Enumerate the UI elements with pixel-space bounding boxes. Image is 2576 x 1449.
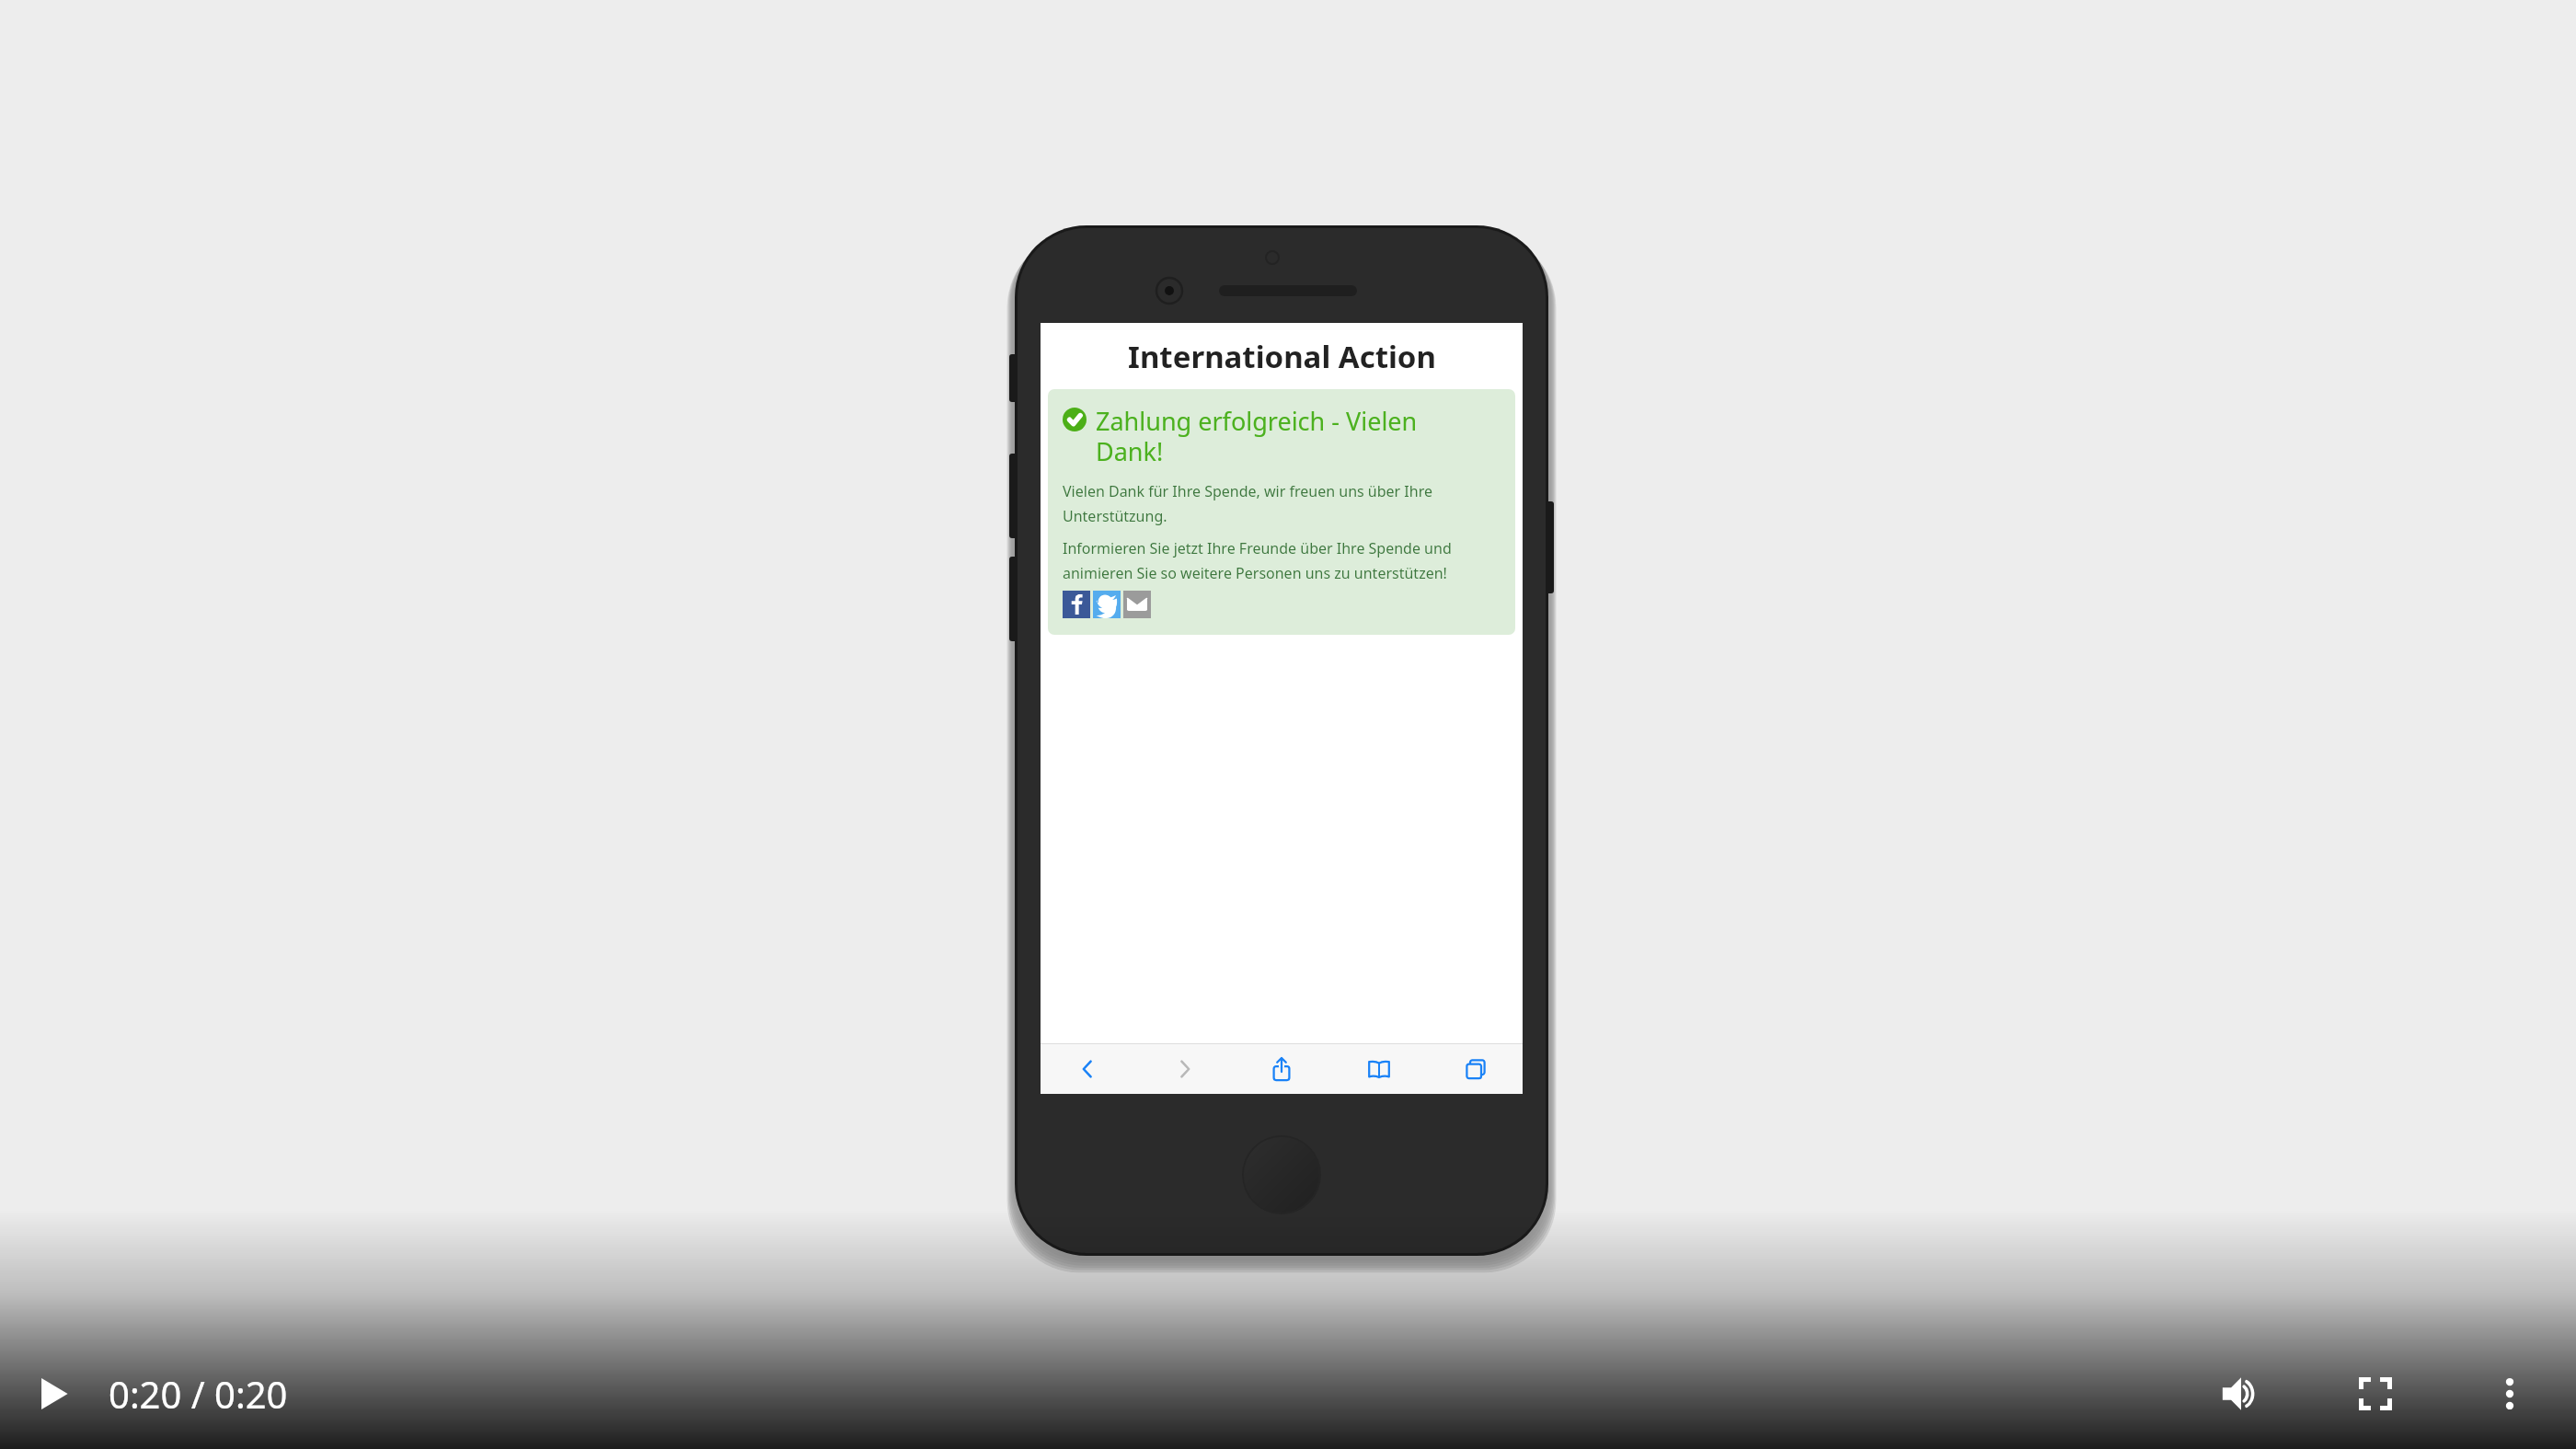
staticText: 0:20 / 0:20: [109, 1369, 288, 1419]
button[interactable]: Full screen: [2331, 1350, 2420, 1438]
button[interactable]: Bookmarks: [1345, 1043, 1413, 1094]
button[interactable]: Share by e-mail: [1123, 591, 1151, 618]
button[interactable]: Share: [1248, 1043, 1316, 1094]
button[interactable]: More options: [2466, 1350, 2554, 1438]
staticText: Vielen Dank für Ihre Spende, wir freuen …: [1063, 481, 1432, 526]
button[interactable]: Tabs: [1442, 1043, 1510, 1094]
button[interactable]: Zahlung erfolgreich - Vielen Dank!: [1048, 389, 1515, 635]
button[interactable]: Forward: [1151, 1043, 1219, 1094]
button[interactable]: Play: [9, 1350, 98, 1438]
staticText: International Action: [1128, 336, 1436, 377]
button[interactable]: Back: [1053, 1043, 1121, 1094]
button[interactable]: Share on Twitter: [1093, 591, 1121, 618]
button[interactable]: Mute: [2197, 1350, 2285, 1438]
staticText: Zahlung erfolgreich - Vielen Dank!: [1096, 404, 1418, 468]
staticText: Informieren Sie jetzt Ihre Freunde über …: [1063, 538, 1452, 583]
button[interactable]: Share on Facebook: [1063, 591, 1090, 618]
